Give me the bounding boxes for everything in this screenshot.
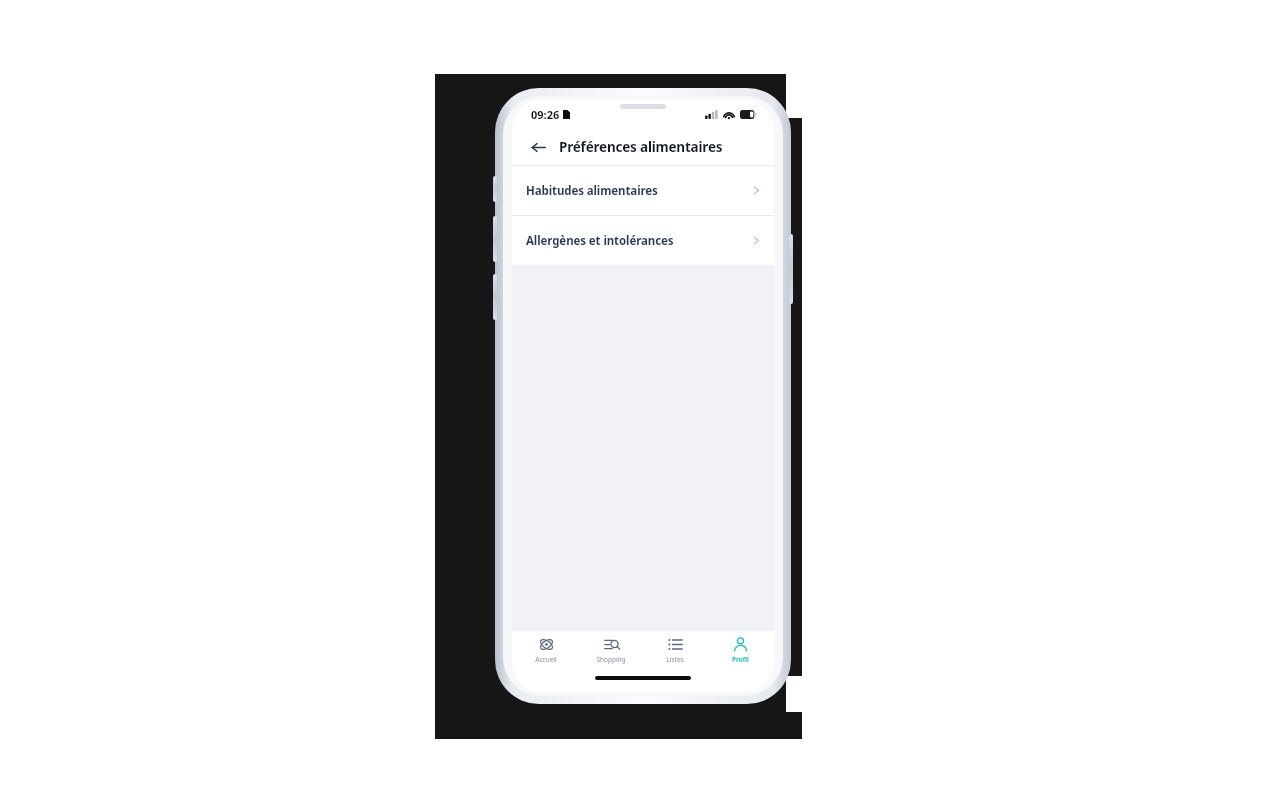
button[interactable]: Shopping — [580, 636, 642, 664]
button[interactable]: Profil — [709, 636, 771, 664]
staticText: Allergènes et intolérances — [526, 233, 674, 249]
staticText: Listes — [666, 655, 684, 664]
button[interactable]: Habitudes alimentaires — [512, 166, 774, 215]
staticText: 09:26 — [531, 107, 560, 122]
button[interactable]: Allergènes et intolérances — [512, 216, 774, 265]
staticText: Habitudes alimentaires — [526, 183, 658, 199]
staticText: Shopping — [596, 655, 626, 664]
staticText: Préférences alimentaires — [559, 138, 723, 156]
button[interactable]: Accueil — [515, 636, 577, 664]
staticText: Accueil — [535, 655, 557, 664]
button[interactable]: Listes — [644, 636, 706, 664]
button[interactable]: Retour — [526, 135, 550, 159]
staticText: Profil — [732, 655, 749, 664]
